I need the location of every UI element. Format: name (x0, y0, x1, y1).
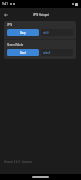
staticText: Stop (20, 31, 26, 35)
staticText: VPN Hotspot (33, 13, 49, 17)
button[interactable]: eth0 (41, 29, 73, 36)
staticText: VPN (7, 23, 13, 27)
staticText: Shared Mode (7, 43, 24, 47)
button[interactable]: Stop (7, 29, 39, 36)
staticText: Start (20, 51, 26, 55)
button[interactable]: wlan0 (41, 49, 73, 56)
staticText: wlan0 (43, 51, 51, 55)
staticText: eth0 (43, 31, 49, 35)
button[interactable]: Navigate up (2, 11, 10, 19)
staticText: Version 2.6.3 · Licenses (4, 160, 32, 164)
staticText: 9:41 (2, 2, 8, 6)
button[interactable]: Start (7, 49, 39, 56)
